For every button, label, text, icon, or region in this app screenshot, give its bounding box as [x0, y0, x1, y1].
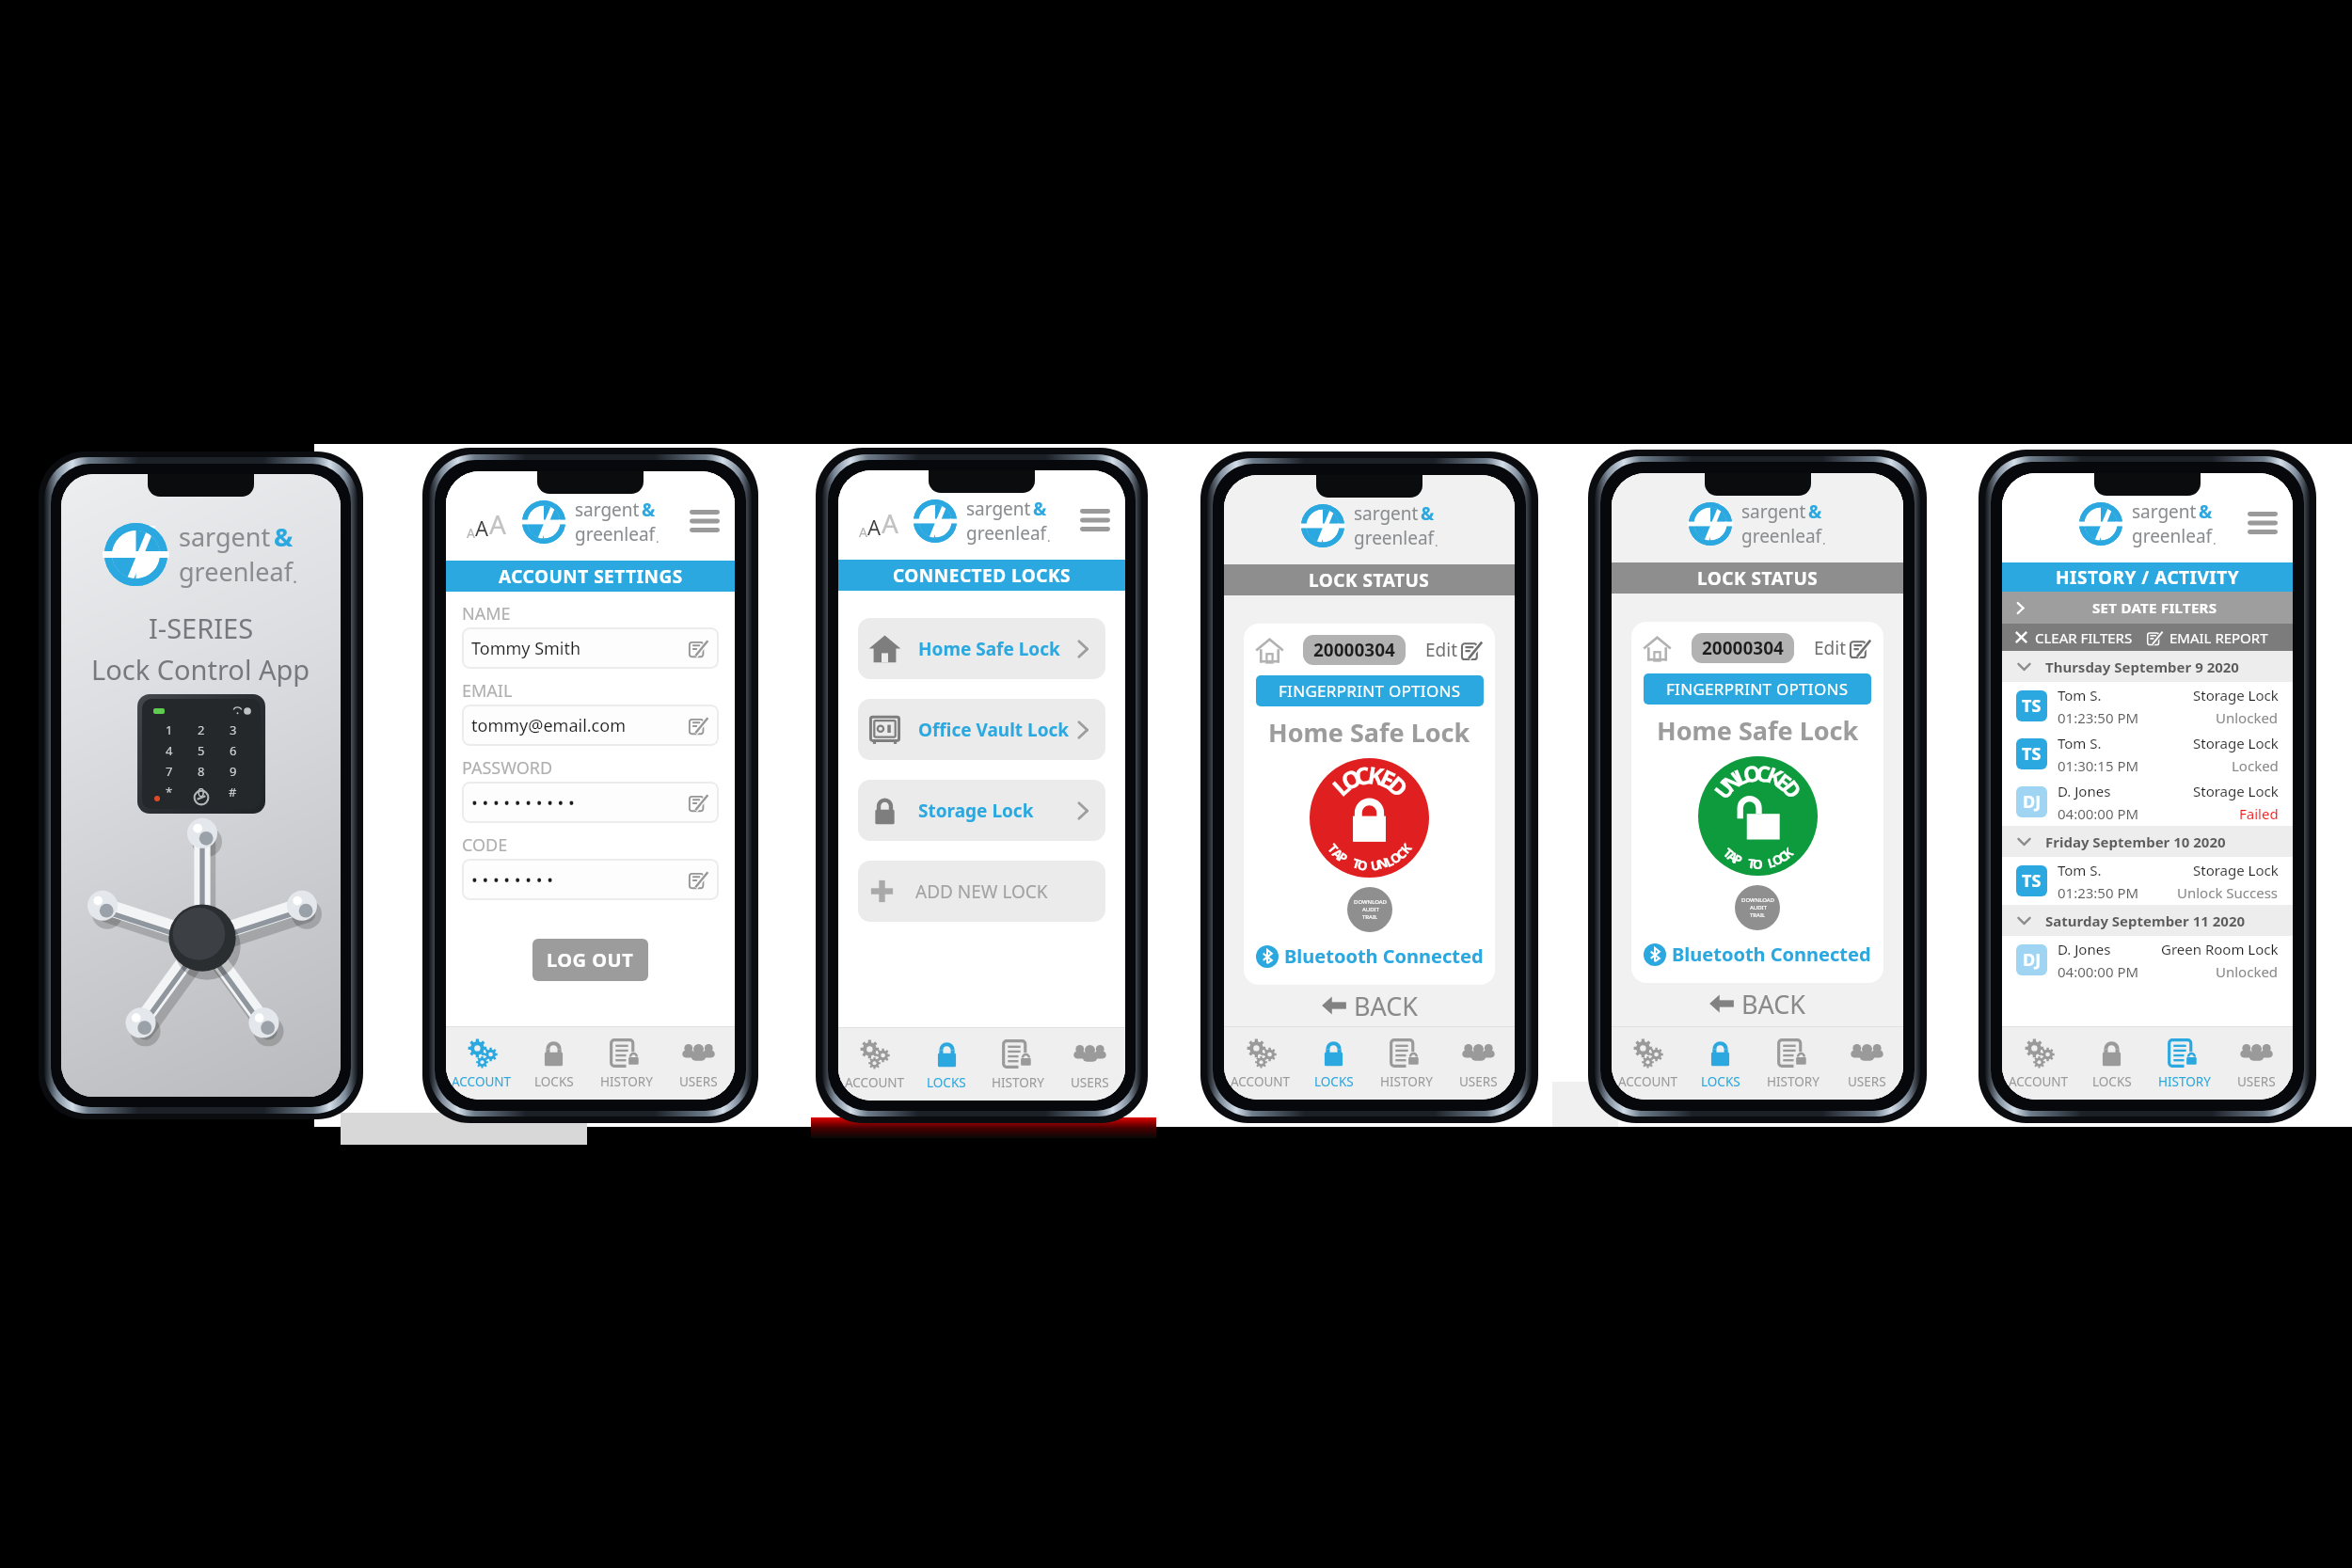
staticText: AUDIT: [1750, 904, 1767, 911]
button[interactable]: Edit lock name: [1814, 636, 1872, 660]
button[interactable]: Thursday September 9 2020: [2002, 651, 2293, 682]
staticText: .: [1435, 533, 1438, 550]
staticText: Tom S.: [2058, 686, 2102, 705]
button[interactable]: TS: [2002, 857, 2293, 905]
button[interactable]: Bluetooth Connected: [1256, 943, 1484, 969]
button[interactable]: Download audit trail: [1735, 885, 1780, 930]
staticText: greenleaf: [2132, 524, 2213, 548]
button[interactable]: SET DATE FILTERS: [2002, 592, 2293, 624]
button[interactable]: LOCKS: [2075, 1027, 2148, 1100]
staticText: CONNECTED LOCKS: [893, 563, 1072, 588]
staticText: T: [1324, 840, 1342, 857]
button[interactable]: ACCOUNT: [2002, 1027, 2075, 1100]
button[interactable]: Download audit trail: [1347, 887, 1392, 932]
staticText: U: [1370, 856, 1382, 874]
button[interactable]: Menu: [690, 510, 720, 532]
button[interactable]: ACCOUNT: [1612, 1027, 1684, 1100]
button[interactable]: USERS: [662, 1027, 735, 1100]
staticText: CODE: [462, 833, 508, 857]
staticText: [1345, 853, 1355, 870]
staticText: O: [1356, 856, 1369, 874]
button[interactable]: HISTORY: [2148, 1027, 2220, 1100]
staticText: 5: [198, 742, 205, 759]
staticText: greenleaf: [1741, 524, 1822, 548]
staticText: O: [1336, 760, 1366, 797]
button[interactable]: Edit CODE: [462, 859, 719, 900]
staticText: Storage Lock: [2193, 782, 2279, 800]
button[interactable]: Menu: [1080, 509, 1110, 531]
button[interactable]: Locked, tap to unlock: [1310, 758, 1429, 878]
staticText: LOCKS: [1701, 1073, 1740, 1090]
button[interactable]: Bluetooth Connected: [1644, 942, 1871, 967]
button[interactable]: Text size: [467, 506, 506, 542]
staticText: 8: [198, 763, 205, 780]
button[interactable]: ACCOUNT: [1224, 1027, 1297, 1100]
button[interactable]: LOCKS: [911, 1028, 982, 1101]
button[interactable]: LOCKS: [1297, 1027, 1370, 1100]
button[interactable]: LOG OUT: [532, 939, 648, 981]
staticText: HISTORY: [1380, 1073, 1433, 1090]
button[interactable]: USERS: [1830, 1027, 1903, 1100]
button[interactable]: USERS: [2220, 1027, 2293, 1100]
button[interactable]: LOCKS: [1684, 1027, 1756, 1100]
button[interactable]: Unlocked, tap to lock: [1698, 756, 1818, 876]
button[interactable]: EMAIL REPORT: [2147, 624, 2293, 651]
staticText: 6: [230, 742, 237, 759]
button[interactable]: TS: [2002, 730, 2293, 778]
staticText: PASSWORD: [462, 756, 553, 780]
button[interactable]: HISTORY: [982, 1028, 1054, 1101]
staticText: sargent: [575, 498, 640, 522]
button[interactable]: Edit lock name: [1425, 638, 1484, 662]
button[interactable]: CLEAR FILTERS: [2002, 624, 2147, 651]
staticText: 1: [166, 721, 173, 738]
staticText: • • • • • • • • • •: [471, 791, 689, 815]
staticText: Failed: [2239, 804, 2279, 823]
button[interactable]: Text size: [859, 505, 898, 541]
staticText: greenleaf: [966, 521, 1047, 546]
staticText: HISTORY / ACTIVITY: [2056, 565, 2240, 590]
button[interactable]: Edit EMAIL: [462, 705, 719, 746]
button[interactable]: Storage Lock: [858, 780, 1105, 841]
button[interactable]: Office Vault Lock: [858, 699, 1105, 760]
staticText: A: [1724, 847, 1741, 867]
staticText: ACCOUNT: [1618, 1073, 1678, 1090]
staticText: HISTORY: [2158, 1073, 2211, 1090]
staticText: [1762, 855, 1768, 872]
staticText: TS: [2022, 742, 2042, 766]
button[interactable]: DJ: [2002, 778, 2293, 826]
staticText: tommy@email.com: [471, 714, 689, 737]
button[interactable]: Menu: [2248, 512, 2278, 534]
button[interactable]: HISTORY: [590, 1027, 662, 1100]
button[interactable]: ADD NEW LOCK: [858, 861, 1105, 922]
button[interactable]: LOCKS: [517, 1027, 590, 1100]
staticText: O: [1769, 850, 1786, 870]
button[interactable]: USERS: [1054, 1028, 1125, 1101]
button[interactable]: BACK: [1224, 985, 1515, 1026]
button[interactable]: Friday September 10 2020: [2002, 826, 2293, 857]
button[interactable]: FINGERPRINT OPTIONS: [1644, 673, 1871, 705]
button[interactable]: USERS: [1442, 1027, 1515, 1100]
button[interactable]: TS: [2002, 682, 2293, 730]
staticText: L: [1383, 852, 1397, 871]
staticText: 20000304: [1702, 636, 1784, 660]
button[interactable]: Saturday September 11 2020: [2002, 905, 2293, 936]
button[interactable]: HISTORY: [1370, 1027, 1442, 1100]
button[interactable]: HISTORY: [1756, 1027, 1830, 1100]
staticText: .: [1822, 531, 1826, 548]
button[interactable]: Edit PASSWORD: [462, 782, 719, 823]
button[interactable]: Home Safe Lock: [858, 618, 1105, 679]
staticText: L: [1325, 770, 1356, 803]
staticText: DJ: [2023, 790, 2042, 814]
staticText: Home Safe Lock: [918, 637, 1071, 661]
staticText: Tom S.: [2058, 734, 2102, 752]
staticText: A: [467, 524, 475, 542]
button[interactable]: FINGERPRINT OPTIONS: [1256, 675, 1484, 706]
staticText: ACCOUNT: [2009, 1073, 2069, 1090]
button[interactable]: ACCOUNT: [446, 1027, 517, 1100]
button[interactable]: ACCOUNT: [838, 1028, 911, 1101]
button[interactable]: DJ: [2002, 936, 2293, 984]
button[interactable]: Edit NAME: [462, 627, 719, 669]
button[interactable]: BACK: [1612, 983, 1903, 1024]
